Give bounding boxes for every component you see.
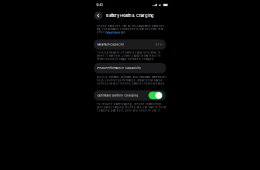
staticText: Built-in dynamic software and hardware s… bbox=[97, 75, 167, 85]
staticText: To reduce battery aging, iPhone learns f… bbox=[97, 102, 167, 112]
staticText: 87% bbox=[155, 43, 162, 46]
staticText: Maximum Capacity bbox=[97, 43, 124, 46]
staticText: 9:41 bbox=[96, 3, 102, 7]
staticText: Phone batteries, like all rechargeable b… bbox=[97, 24, 165, 34]
staticText: Peak Performance Capability bbox=[97, 66, 141, 70]
button[interactable]: Learn more... bbox=[105, 31, 124, 34]
button[interactable]: Optimized Battery Charging bbox=[94, 90, 166, 101]
staticText: Battery Health & Charging bbox=[106, 13, 154, 18]
staticText: Optimized Battery Charging bbox=[97, 94, 138, 97]
staticText: Learn more... bbox=[105, 31, 124, 34]
button[interactable]: Back bbox=[94, 12, 102, 20]
staticText: This is a measure of battery capacity re… bbox=[97, 51, 161, 61]
button[interactable]: Peak Performance Capability bbox=[94, 63, 166, 73]
button[interactable]: Maximum Capacity bbox=[94, 39, 166, 50]
